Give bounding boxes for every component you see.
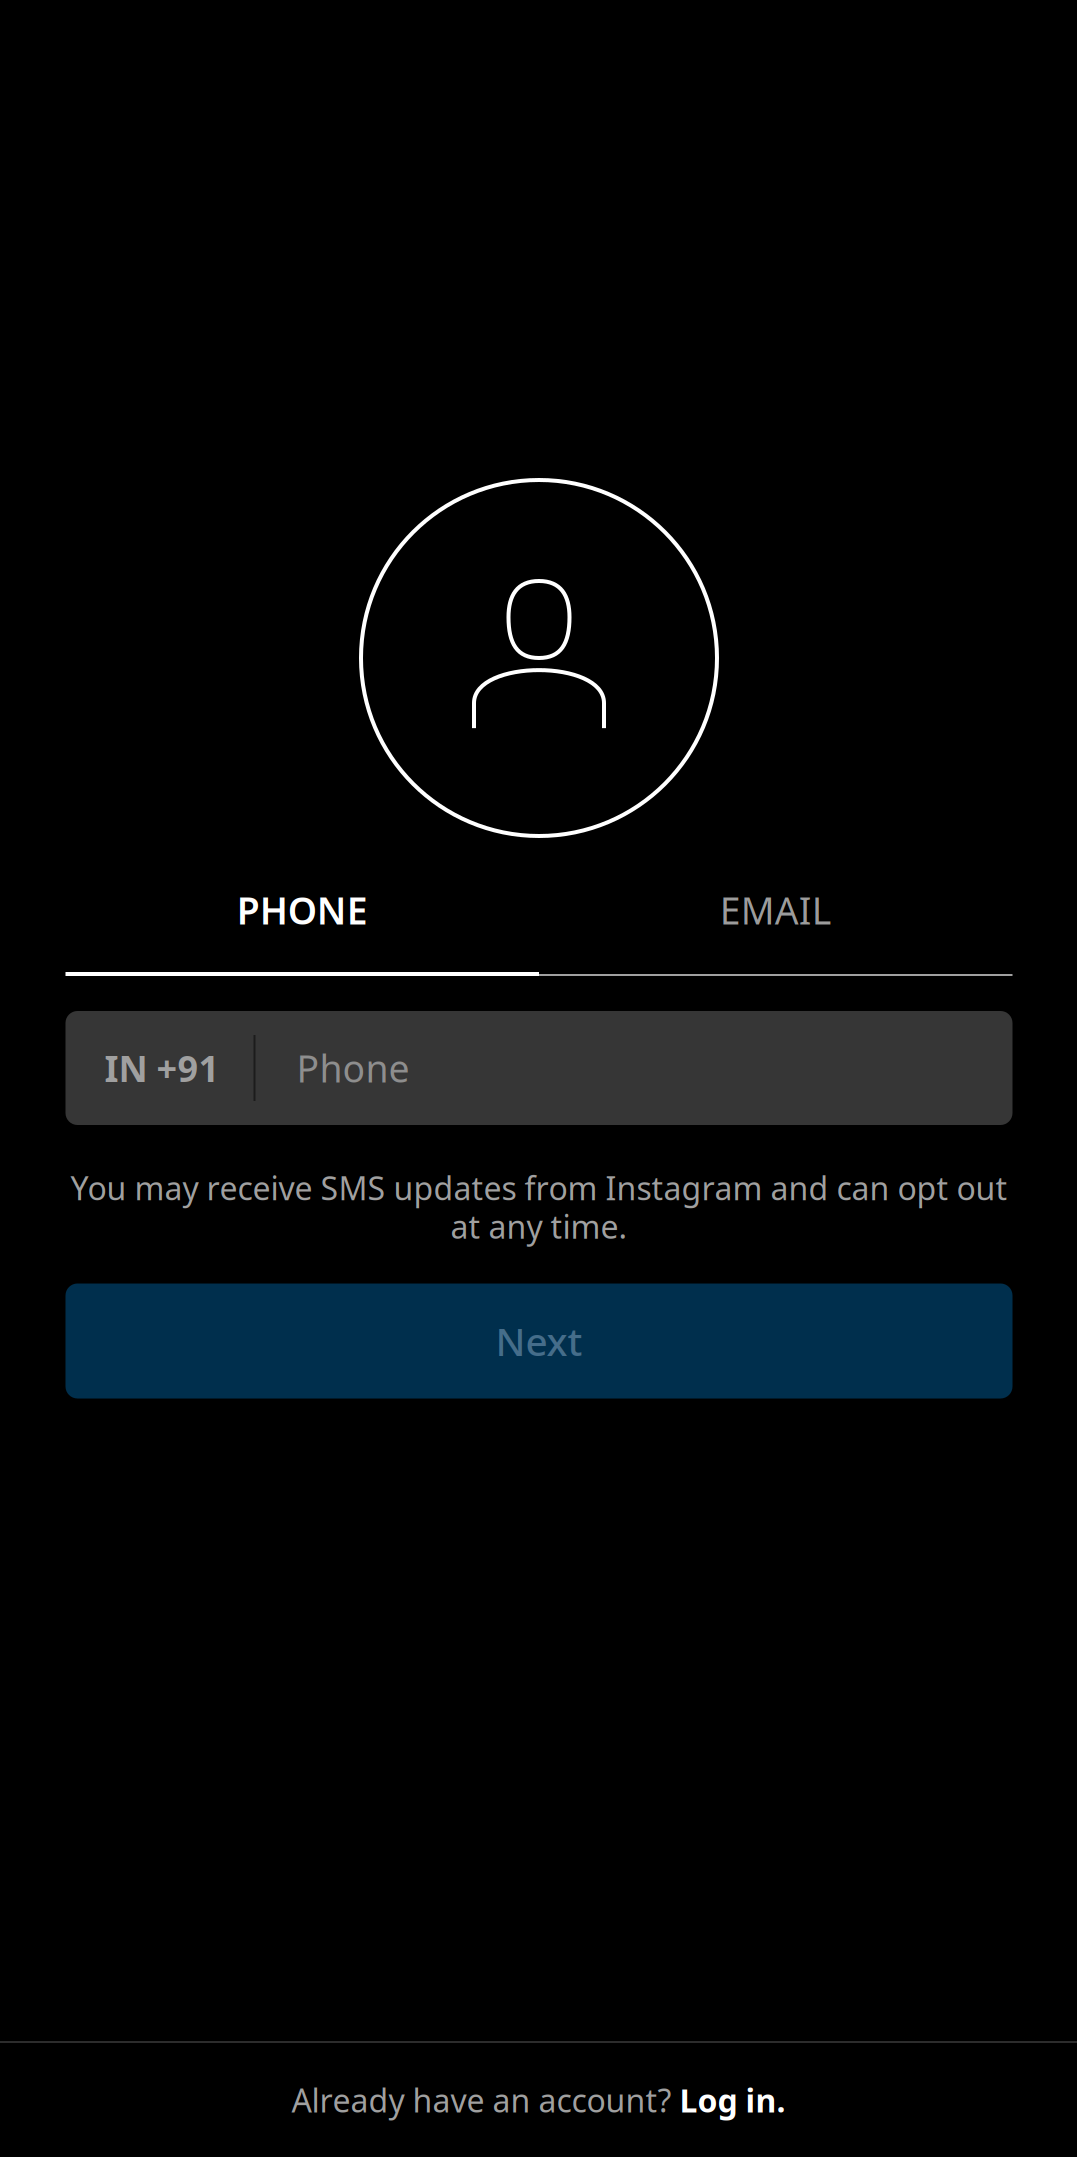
button[interactable]: PHONE [65,862,539,958]
staticText: PHONE [237,885,368,935]
staticText: IN +91 [104,1044,219,1092]
staticText: Phone [296,1043,409,1093]
staticText: Next [495,1315,582,1367]
button[interactable]: Already have an account? [0,2043,1077,2157]
staticText: You may receive SMS updates from Instagr… [70,1166,1007,1209]
button[interactable]: EMAIL [539,862,1012,958]
staticText: Already have an account? [291,2079,679,2121]
button[interactable]: IN +91 [65,1011,1012,1125]
button[interactable]: Next [65,1283,1012,1398]
staticText: at any time. [450,1205,627,1247]
staticText: Log in. [679,2079,785,2121]
staticText: EMAIL [720,885,832,935]
